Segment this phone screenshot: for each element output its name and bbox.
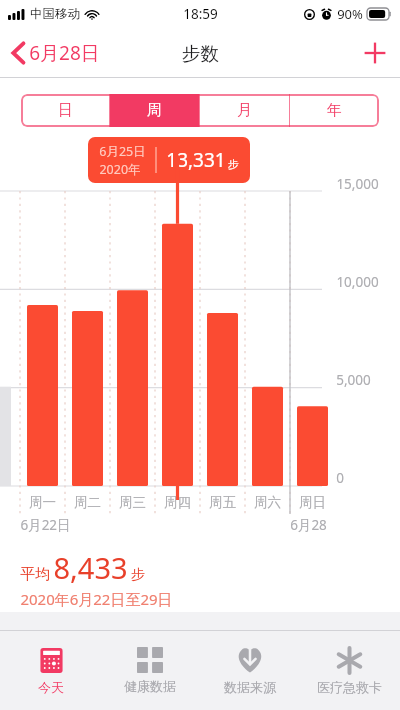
staticText: 8,433 <box>53 548 128 587</box>
staticText: 6月28 <box>290 516 327 534</box>
staticText: 年 <box>327 101 342 120</box>
staticText: 日 <box>58 101 73 120</box>
staticText: 周五 <box>209 494 236 511</box>
staticText: 10,000 <box>336 273 379 291</box>
button[interactable]: Add <box>350 28 400 78</box>
button[interactable]: 数据来源 <box>202 640 298 701</box>
button[interactable]: 医疗急救卡 <box>301 641 397 701</box>
button[interactable]: 6月28日 <box>0 34 112 72</box>
staticText: 月 <box>237 101 252 120</box>
staticText: 周日 <box>299 494 326 511</box>
staticText: 今天 <box>38 679 64 695</box>
staticText: 13,331 <box>166 147 226 173</box>
staticText: 15,000 <box>336 175 379 193</box>
button[interactable]: 周 <box>110 94 199 127</box>
staticText: 90% <box>337 5 363 23</box>
staticText: 6月28日 <box>29 40 100 66</box>
staticText: 平均 <box>20 565 50 584</box>
staticText: 6月25日 <box>99 143 146 160</box>
staticText: 2020年 <box>99 161 141 177</box>
staticText: 周四 <box>164 494 191 511</box>
staticText: 步 <box>228 157 239 171</box>
staticText: 步 <box>131 566 145 584</box>
staticText: 周六 <box>254 494 281 511</box>
staticText: 2020年6月22日至29日 <box>20 589 173 609</box>
staticText: 健康数据 <box>124 678 176 694</box>
staticText: 6月22日 <box>20 516 71 534</box>
button[interactable]: 健康数据 <box>102 641 198 700</box>
staticText: 5,000 <box>336 371 371 389</box>
staticText: 周 <box>147 101 162 120</box>
button[interactable]: 今天 <box>3 641 99 701</box>
button[interactable]: 6月25日 <box>88 137 250 183</box>
button[interactable]: 日 <box>21 94 109 127</box>
staticText: 中国移动 <box>30 6 80 22</box>
button[interactable]: 年 <box>290 94 379 127</box>
staticText: 周三 <box>119 494 146 511</box>
staticText: 医疗急救卡 <box>317 679 382 695</box>
staticText: 0 <box>336 469 344 487</box>
staticText: 数据来源 <box>224 679 276 695</box>
staticText: 步数 <box>182 42 219 65</box>
staticText: 18:59 <box>183 5 218 23</box>
staticText: 周二 <box>74 494 101 511</box>
button[interactable]: 月 <box>200 94 289 127</box>
staticText: 周一 <box>29 494 56 511</box>
